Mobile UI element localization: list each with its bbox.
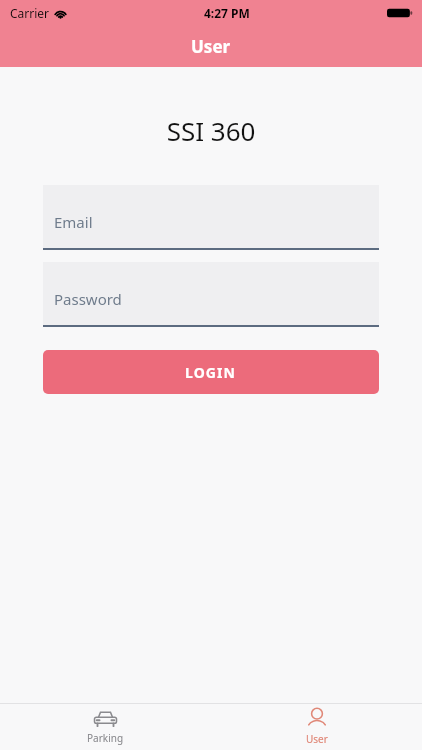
staticText: User	[191, 35, 231, 58]
staticText: Email	[54, 212, 93, 232]
staticText: SSI 360	[0, 113, 422, 148]
button[interactable]: Password	[43, 262, 379, 327]
button[interactable]: User	[211, 704, 422, 750]
staticText: Parking	[87, 731, 124, 745]
staticText: 4:27 PM	[204, 5, 250, 21]
button[interactable]: Parking	[0, 704, 211, 750]
staticText: Password	[54, 289, 122, 309]
staticText: Carrier	[10, 5, 50, 21]
button[interactable]: Email	[43, 185, 379, 250]
staticText: LOGIN	[185, 363, 237, 382]
button[interactable]: LOGIN	[43, 350, 379, 394]
staticText: User	[306, 732, 328, 746]
